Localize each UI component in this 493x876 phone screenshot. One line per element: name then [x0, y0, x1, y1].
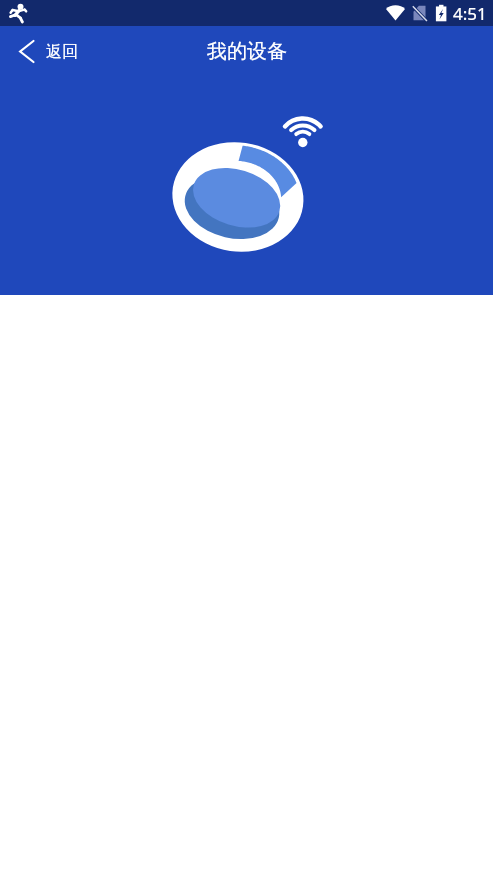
staticText: 返回: [46, 42, 78, 62]
staticText: 我的设备: [207, 39, 287, 64]
button[interactable]: 返回: [0, 29, 94, 74]
staticText: 4:51: [453, 2, 487, 25]
